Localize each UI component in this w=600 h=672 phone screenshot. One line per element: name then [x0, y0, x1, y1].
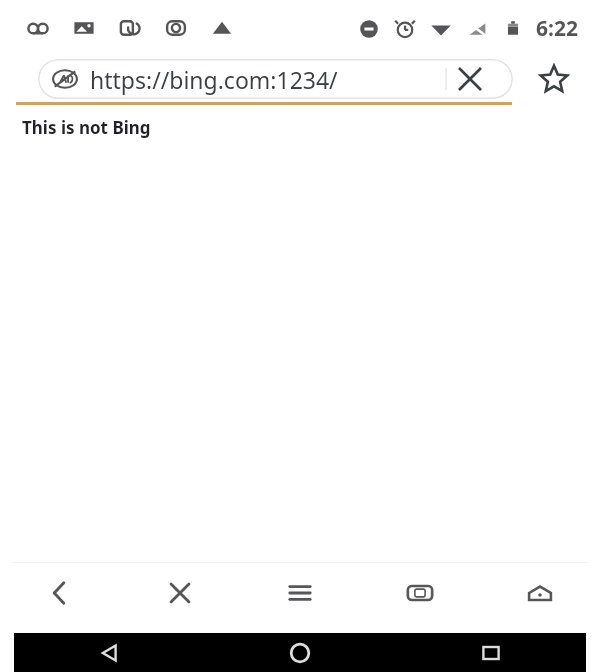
- button[interactable]: Back: [0, 563, 120, 623]
- button[interactable]: Stop loading: [451, 60, 489, 98]
- button[interactable]: Bookmark: [532, 57, 576, 101]
- staticText: https://bing.com:1234/: [90, 64, 338, 95]
- button[interactable]: Home: [204, 633, 395, 672]
- staticText: 6:22: [536, 14, 578, 43]
- staticText: This is not Bing: [22, 116, 151, 139]
- button[interactable]: Tabs: [360, 563, 480, 623]
- button[interactable]: Back: [14, 633, 204, 672]
- button[interactable]: Menu: [240, 563, 360, 623]
- button[interactable]: https://bing.com:1234/: [38, 59, 513, 99]
- button[interactable]: Home: [480, 563, 600, 623]
- button[interactable]: Stop: [120, 563, 240, 623]
- button[interactable]: Recent apps: [395, 633, 586, 672]
